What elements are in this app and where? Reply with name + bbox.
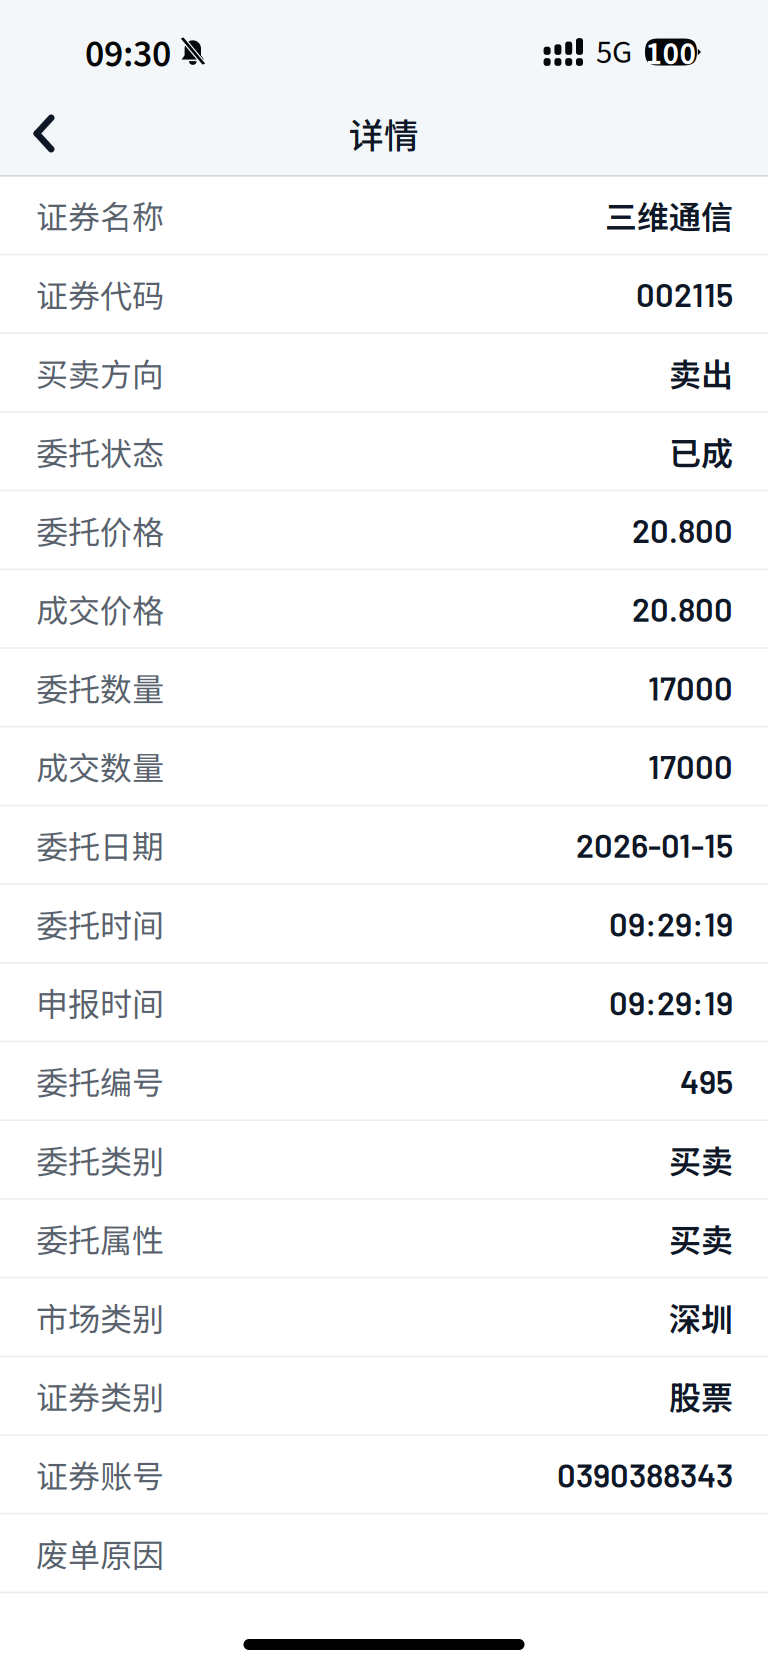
staticText: 申报时间 [36,979,164,1025]
button[interactable]: 买卖方向 [0,334,768,413]
staticText: 深圳 [669,1294,733,1340]
staticText: 证券名称 [36,192,164,238]
staticText: 委托价格 [36,507,164,553]
staticText: 09:29:19 [609,904,733,943]
staticText: 17000 [648,746,733,786]
button[interactable]: 证券代码 [0,255,768,334]
staticText: 20.800 [632,510,733,549]
staticText: 495 [680,1061,733,1100]
staticText: 买卖方向 [36,349,164,396]
staticText: 0390388343 [557,1455,733,1494]
staticText: 废单原因 [36,1530,164,1576]
button[interactable]: 证券类别 [0,1357,768,1436]
button[interactable]: 申报时间 [0,964,768,1042]
button[interactable]: 委托数量 [0,649,768,727]
staticText: 已成 [669,428,733,474]
staticText: 三维通信 [605,192,733,238]
staticText: 委托编号 [36,1058,164,1104]
staticText: 股票 [669,1372,733,1419]
button[interactable]: 成交价格 [0,570,768,649]
staticText: 委托属性 [36,1215,164,1261]
staticText: 详情 [349,108,419,159]
staticText: 09:29:19 [609,982,733,1022]
staticText: 证券类别 [36,1372,164,1419]
staticText: 卖出 [669,349,733,396]
button[interactable]: 委托日期 [0,806,768,885]
staticText: 002115 [636,274,733,313]
staticText: 100 [645,32,696,72]
button[interactable]: 委托编号 [0,1042,768,1121]
staticText: 20.800 [632,589,733,628]
staticText: 证券代码 [36,271,164,317]
staticText: 买卖 [669,1215,733,1261]
button[interactable]: 成交数量 [0,727,768,806]
button[interactable]: 市场类别 [0,1278,768,1357]
staticText: 5G [596,29,632,71]
staticText: 成交价格 [36,585,164,632]
button[interactable]: 废单原因 [0,1514,768,1593]
button[interactable]: 委托属性 [0,1200,768,1278]
button[interactable]: 委托类别 [0,1121,768,1200]
staticText: 2026-01-15 [576,825,733,864]
staticText: 委托时间 [36,900,164,947]
button[interactable]: 返回 [0,92,88,175]
staticText: 买卖 [669,1136,733,1183]
staticText: 成交数量 [36,743,164,789]
staticText: 证券账号 [36,1451,164,1497]
button[interactable]: 委托状态 [0,413,768,491]
button[interactable]: 证券名称 [0,177,768,255]
button[interactable]: 委托价格 [0,491,768,570]
staticText: 委托数量 [36,664,164,710]
staticText: 09:30 [85,28,171,76]
staticText: 委托日期 [36,822,164,868]
staticText: 委托类别 [36,1136,164,1183]
staticText: 市场类别 [36,1294,164,1340]
button[interactable]: 委托时间 [0,885,768,964]
staticText: 17000 [648,668,733,707]
staticText: 委托状态 [36,428,164,474]
button[interactable]: 证券账号 [0,1436,768,1514]
